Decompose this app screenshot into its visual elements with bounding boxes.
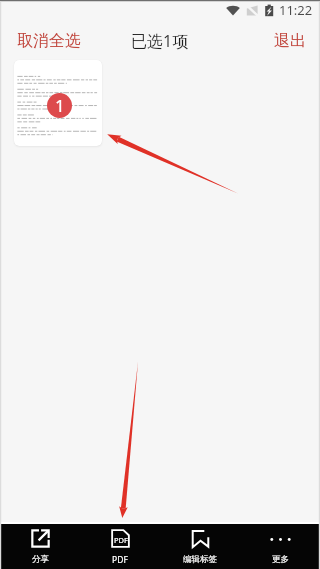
button[interactable]: 退出 xyxy=(260,21,320,61)
staticText: PDF xyxy=(114,535,128,545)
button[interactable]: 分享 xyxy=(0,524,80,569)
button[interactable]: PDF xyxy=(80,524,160,569)
staticText: 1 xyxy=(55,94,65,117)
staticText: PDF xyxy=(112,554,128,566)
button[interactable]: 更多 xyxy=(240,524,320,569)
button[interactable]: 编辑标签 xyxy=(160,524,240,569)
staticText: 分享 xyxy=(32,554,49,565)
staticText: 取消全选 xyxy=(17,31,81,51)
staticText: 编辑标签 xyxy=(183,554,217,565)
button[interactable]: 取消全选 xyxy=(0,21,98,61)
staticText: 退出 xyxy=(274,31,306,51)
button[interactable]: 1 xyxy=(14,60,102,146)
staticText: 11:22 xyxy=(279,1,313,19)
staticText: 已选1项 xyxy=(131,30,189,52)
staticText: 更多 xyxy=(272,554,289,565)
